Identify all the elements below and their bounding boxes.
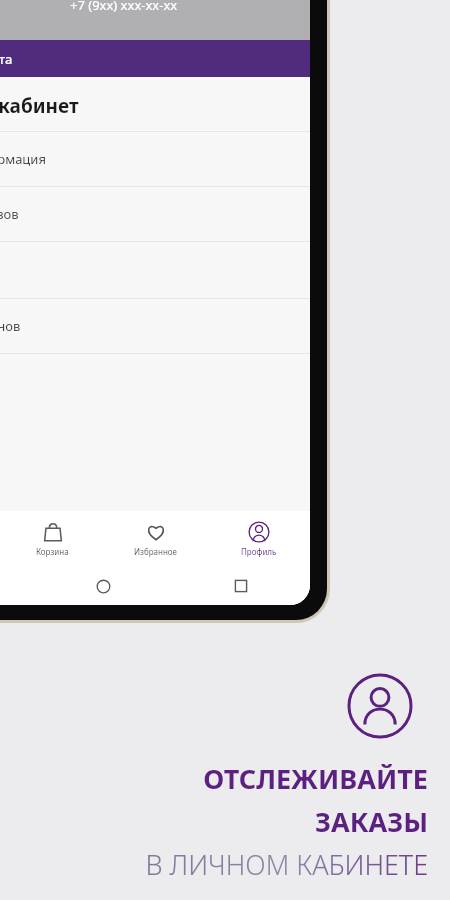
button[interactable]: Профиль xyxy=(207,511,310,567)
staticText: +7 (9xx) xxx-xx-xx xyxy=(70,0,178,14)
staticText: Личная информация xyxy=(0,150,46,168)
button[interactable]: История заказов xyxy=(0,187,310,241)
staticText: История заказов xyxy=(0,205,19,223)
button[interactable]: Избранное xyxy=(104,511,207,567)
staticText: ОТСЛЕЖИВАЙТЕ xyxy=(203,760,428,797)
button[interactable]: Бонусная карта xyxy=(0,40,310,77)
staticText: Корзина xyxy=(36,546,69,557)
button[interactable]: Карта магазинов xyxy=(0,299,310,353)
staticText: Личный кабинет xyxy=(0,93,79,119)
staticText: Избранное xyxy=(134,546,178,557)
button[interactable]: Recents xyxy=(172,567,310,605)
staticText: Профиль xyxy=(241,546,277,557)
staticText: В ЛИЧНОМ КАБИНЕТЕ xyxy=(145,846,428,883)
staticText: ЗАКАЗЫ xyxy=(315,803,428,840)
button[interactable]: Личная информация xyxy=(0,132,310,186)
staticText: Карта магазинов xyxy=(0,317,21,335)
button[interactable]: Корзина xyxy=(1,511,104,567)
staticText: Бонусная карта xyxy=(0,50,13,68)
button[interactable]: Home xyxy=(34,567,172,605)
